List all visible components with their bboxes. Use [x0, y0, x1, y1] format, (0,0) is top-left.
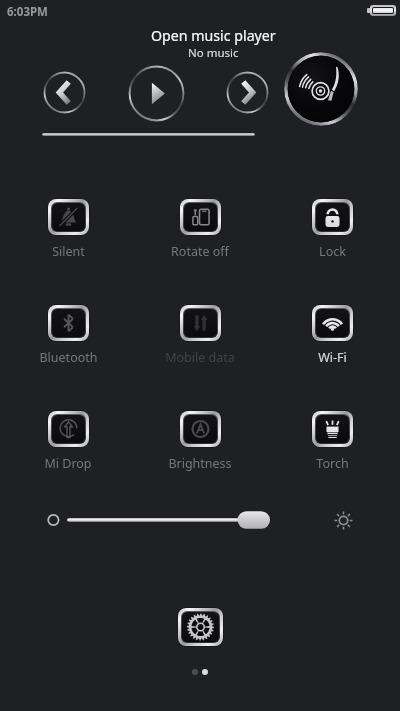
staticText: Brightness: [168, 455, 232, 472]
button[interactable]: Silent: [24, 199, 112, 260]
button[interactable]: Play: [128, 65, 185, 122]
button[interactable]: Settings: [178, 608, 223, 646]
button[interactable]: Brightness slider: [40, 504, 280, 536]
staticText: 6:03PM: [7, 4, 48, 20]
staticText: Torch: [316, 455, 349, 472]
staticText: Mi Drop: [44, 455, 92, 472]
button[interactable]: Brightness: [156, 411, 244, 472]
button[interactable]: Open music player: [123, 26, 303, 60]
staticText: Bluetooth: [39, 349, 98, 366]
button[interactable]: Wi-Fi: [288, 305, 376, 366]
button[interactable]: Auto brightness: [331, 508, 356, 533]
staticText: No music: [188, 45, 239, 60]
button[interactable]: Bluetooth: [24, 305, 112, 366]
button[interactable]: Mi Drop: [24, 411, 112, 472]
button[interactable]: Lock: [288, 199, 376, 260]
staticText: Open music player: [151, 26, 276, 45]
staticText: Lock: [319, 243, 346, 260]
button[interactable]: Torch: [288, 411, 376, 472]
staticText: Mobile data: [165, 349, 235, 366]
button[interactable]: Previous track: [43, 71, 86, 114]
button[interactable]: Next track: [226, 71, 269, 114]
staticText: Silent: [52, 243, 85, 260]
button[interactable]: Album art: [284, 52, 358, 126]
button[interactable]: Mobile data: [156, 305, 244, 366]
staticText: Wi-Fi: [318, 349, 347, 366]
button[interactable]: Rotate off: [156, 199, 244, 260]
staticText: Rotate off: [171, 243, 229, 260]
